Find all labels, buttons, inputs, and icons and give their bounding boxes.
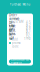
staticText: 2.80	[26, 26, 31, 34]
staticText: Add promo code	[12, 38, 21, 48]
staticText: 3.10	[26, 29, 31, 37]
button[interactable]: Croissant	[9, 25, 31, 28]
button[interactable]: Espresso	[9, 22, 31, 25]
staticText: 4.50	[26, 20, 31, 28]
button[interactable]: Continue to Payment	[9, 59, 31, 63]
staticText: 13.60	[26, 32, 31, 40]
staticText: Subtotal	[9, 32, 16, 40]
staticText: 3.20	[26, 23, 31, 31]
staticText: Tax	[9, 37, 12, 41]
staticText: Espresso	[9, 20, 15, 28]
staticText: Orange Juice	[9, 25, 16, 35]
button[interactable]: Muffin	[9, 31, 31, 34]
staticText: Purchase Menu	[9, 3, 30, 6]
staticText: 1.12	[24, 37, 31, 41]
button[interactable]: Subtotal	[9, 34, 31, 37]
staticText: Muffin	[9, 29, 16, 37]
staticText: Croissant	[9, 23, 16, 31]
staticText: Continue to Payment	[11, 58, 29, 65]
staticText: Order Summary	[9, 13, 19, 21]
button[interactable]: Tax	[9, 37, 31, 40]
staticText: Today at 10:24 AM	[9, 16, 23, 24]
button[interactable]: Orange Juice	[9, 28, 31, 31]
